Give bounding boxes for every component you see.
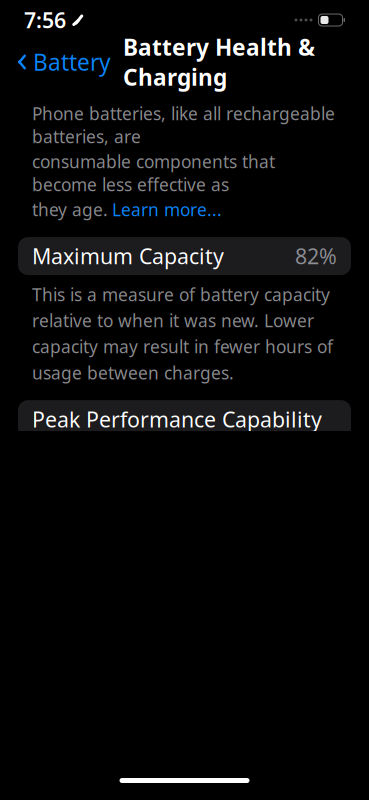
staticText: Battery [33,47,111,77]
button[interactable]: Learn more... [112,198,222,221]
staticText: they age. [32,198,108,221]
staticText: consumable components that become less e… [32,150,275,196]
staticText: This is a measure of battery capacity re… [32,283,333,384]
staticText: Maximum Capacity [32,242,224,270]
staticText: 7:56 [24,6,66,34]
button[interactable]: Battery [4,39,111,85]
staticText: Peak Performance Capability [32,405,322,433]
button[interactable]: Maximum Capacity [18,237,351,275]
staticText: Battery Health & Charging [123,32,315,92]
staticText: Phone batteries, like all rechargeable b… [32,102,335,148]
staticText: 82% [295,242,337,270]
button[interactable]: Peak Performance Capability [18,400,351,438]
staticText: Learn more... [112,198,222,221]
